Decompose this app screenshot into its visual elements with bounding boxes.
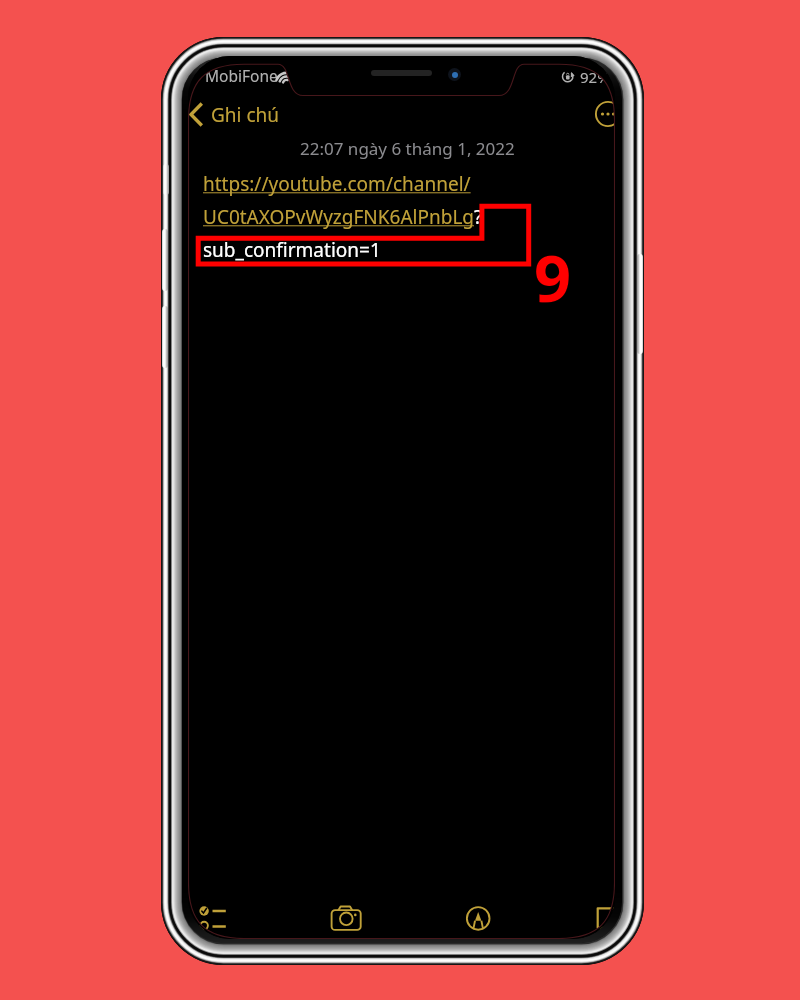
button[interactable]: Volume up	[162, 229, 168, 291]
button[interactable]: New note	[596, 907, 615, 930]
staticText: 22:07 ngày 6 tháng 1, 2022	[300, 137, 515, 160]
staticText: 92%	[580, 67, 610, 87]
button[interactable]: More options	[595, 101, 615, 127]
button[interactable]: Markup	[465, 905, 491, 931]
staticText: 9	[534, 233, 572, 322]
staticText: MobiFone	[205, 65, 278, 86]
button[interactable]: Checklist	[195, 902, 229, 932]
staticText: https://youtube.com/channel/UC0tAXOPvWyz…	[203, 171, 503, 262]
button[interactable]: Ring silent switch	[163, 164, 169, 195]
button[interactable]: Back	[188, 102, 203, 127]
button[interactable]: Power	[637, 254, 643, 354]
button[interactable]: Volume down	[162, 306, 168, 368]
button[interactable]: Camera	[330, 904, 363, 932]
button[interactable]: Ghi chú	[211, 102, 280, 128]
